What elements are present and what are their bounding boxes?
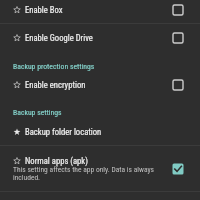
staticText: Normal apps (apk) [25,156,88,166]
staticText: Enable encryption [25,80,172,90]
staticText: Backup protection settings [13,62,95,71]
staticText: Enable Box [25,5,172,15]
staticText: Enable Google Drive [25,33,172,43]
button[interactable]: Enable Google Drive [0,24,200,52]
button[interactable]: Normal apps (apk) [0,146,200,191]
staticText: Backup folder location [25,127,184,137]
staticText: This setting affects the app only. Data … [13,165,166,182]
button[interactable]: Enable Box [0,0,200,24]
staticText: Backup settings [13,108,62,117]
button[interactable]: Backup folder location [0,118,200,146]
button[interactable]: Enable encryption [0,71,200,99]
